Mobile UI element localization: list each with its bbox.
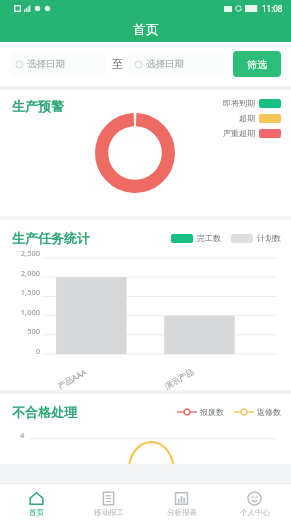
staticText: 1,500 <box>20 287 40 297</box>
staticText: 计划数 <box>257 233 281 243</box>
button[interactable]: 选择日期 <box>129 51 225 77</box>
staticText: 至 <box>112 57 123 71</box>
staticText: 完工数 <box>197 233 221 243</box>
staticText: 2,500 <box>20 248 40 258</box>
staticText: 首页 <box>133 21 159 37</box>
staticText: 500 <box>27 326 40 336</box>
staticText: 11:08 <box>262 3 283 14</box>
button[interactable]: 移动报工 <box>72 484 145 524</box>
other: 分析报表 <box>174 491 189 506</box>
staticText: 返修数 <box>257 407 281 417</box>
staticText: 首页 <box>29 508 44 517</box>
staticText: 个人中心 <box>240 508 270 517</box>
staticText: 1,000 <box>20 307 40 317</box>
staticText: 分析报表 <box>167 508 197 517</box>
button[interactable]: 个人中心 <box>218 484 291 524</box>
staticText: 产品AAA <box>55 366 89 391</box>
staticText: 生产任务统计 <box>12 230 90 246</box>
staticText: 演示产品 <box>163 367 195 391</box>
staticText: 移动报工 <box>94 508 124 517</box>
staticText: 即将到期 <box>223 98 255 108</box>
staticText: 0 <box>35 346 40 356</box>
staticText: 2,000 <box>20 268 40 278</box>
button[interactable]: 选择日期 <box>10 51 106 77</box>
staticText: 筛选 <box>247 58 267 71</box>
button[interactable]: 首页 <box>0 484 72 524</box>
button[interactable]: 分析报表 <box>145 484 218 524</box>
staticText: 4 <box>20 430 25 440</box>
staticText: 选择日期 <box>146 58 184 70</box>
staticText: 严重超期 <box>223 128 255 138</box>
staticText: 超期 <box>239 113 255 123</box>
staticText: 不合格处理 <box>12 404 77 420</box>
button[interactable]: 筛选 <box>233 51 281 77</box>
other: 首页 <box>29 491 44 506</box>
other: 移动报工 <box>101 491 116 506</box>
staticText: 选择日期 <box>27 58 65 70</box>
staticText: 生产预警 <box>12 98 64 114</box>
staticText: 报废数 <box>200 407 224 417</box>
other: 个人中心 <box>247 491 262 506</box>
